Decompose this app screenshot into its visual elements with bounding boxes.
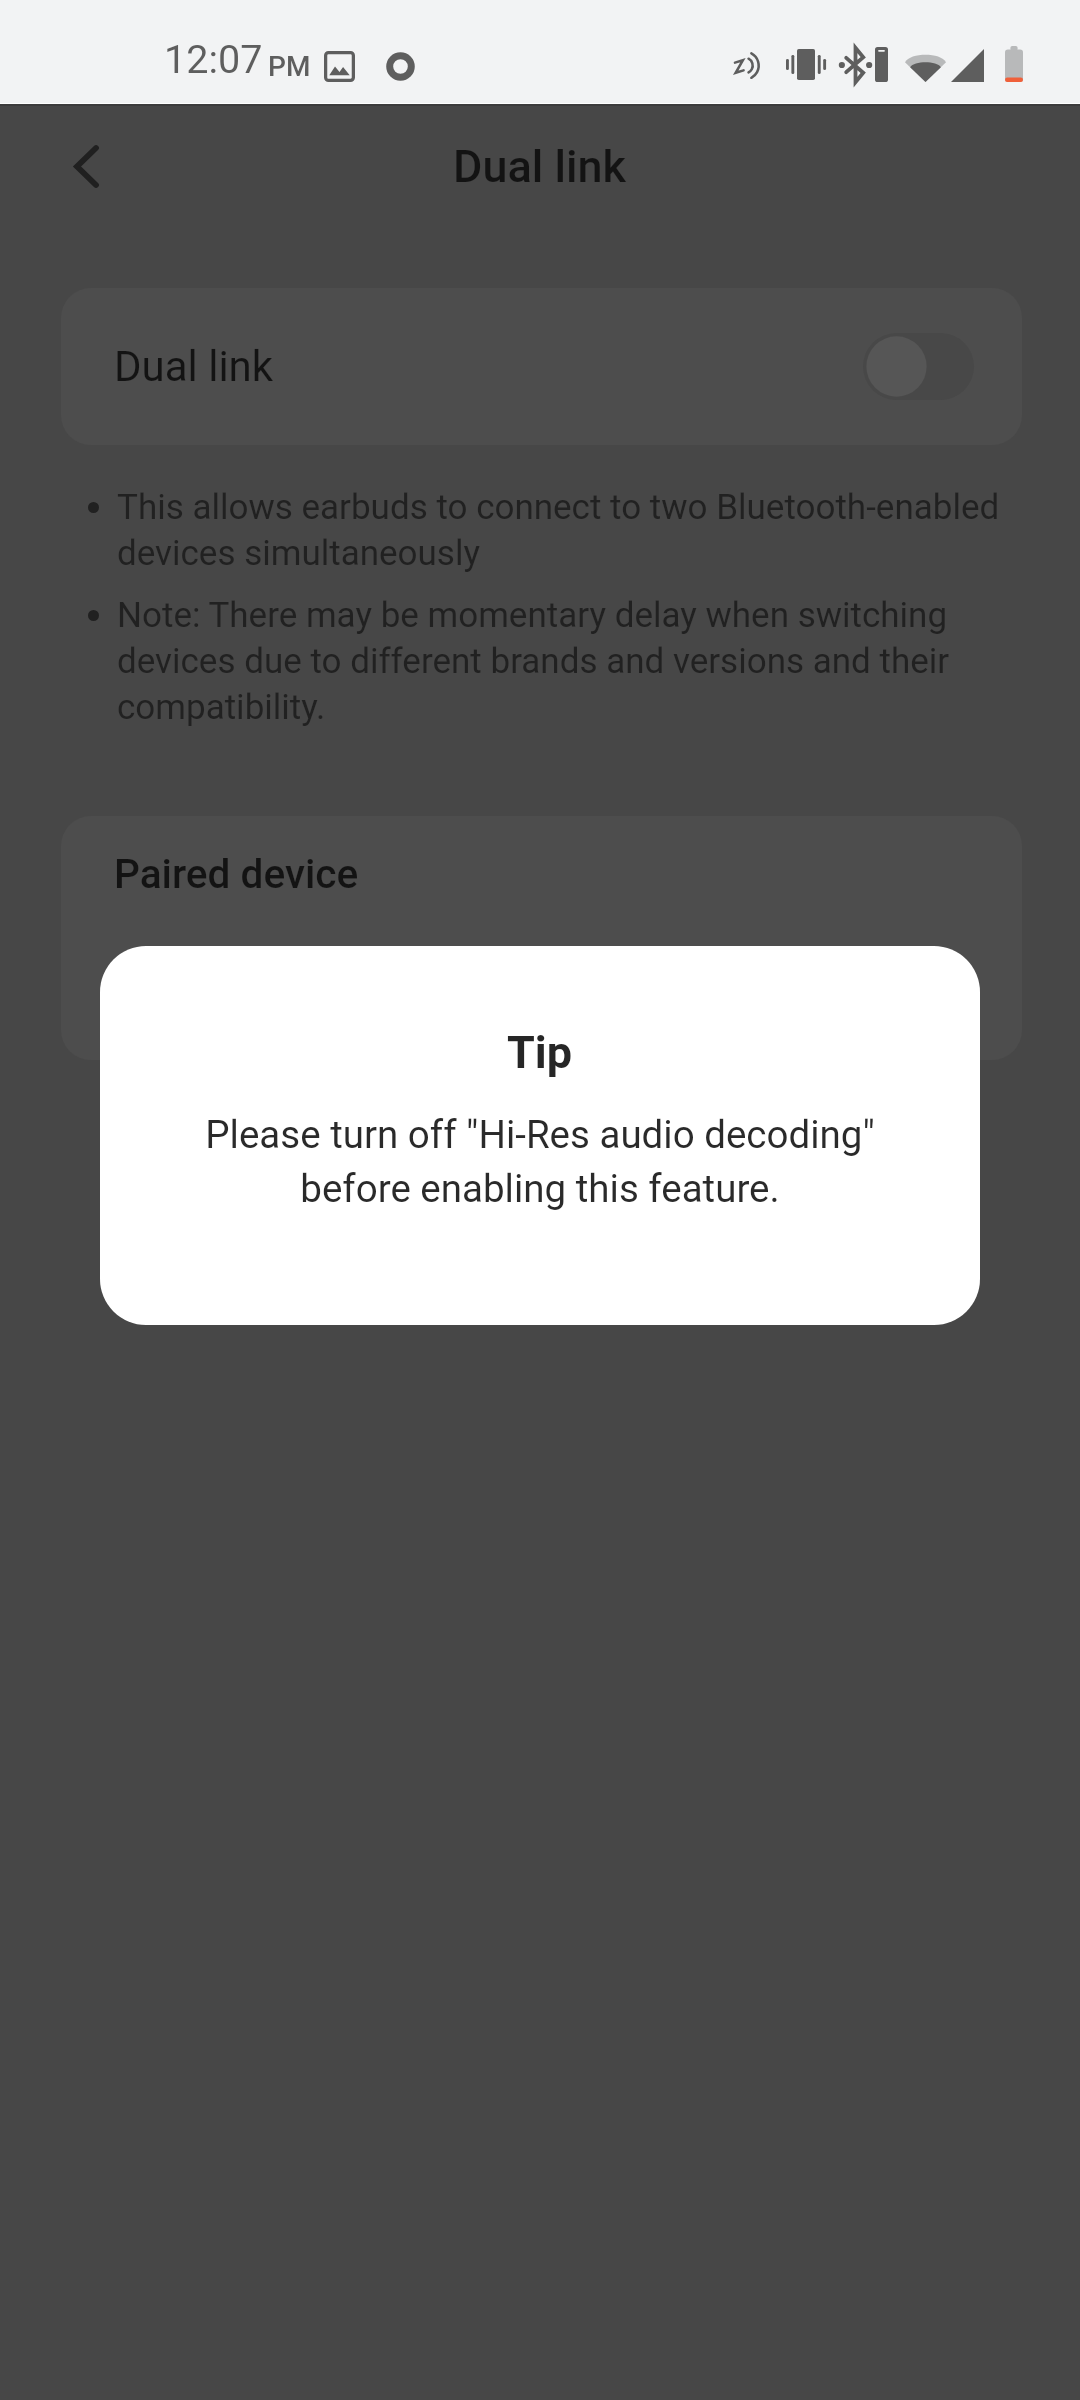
button[interactable]: Paired device xyxy=(61,816,1022,1060)
staticText: Paired device xyxy=(114,850,359,897)
staticText: Dual link xyxy=(453,140,627,193)
staticText: Please turn off "Hi-Res audio decoding" … xyxy=(205,1112,875,1211)
button[interactable]: Dual link xyxy=(61,288,1022,445)
staticText: Note: There may be momentary delay when … xyxy=(117,595,1017,728)
staticText: PM xyxy=(268,50,311,83)
staticText: Tip xyxy=(507,1026,573,1079)
button[interactable]: Dual link toggle, off xyxy=(863,333,974,400)
staticText: Dual link xyxy=(114,342,274,391)
staticText: 12:07 xyxy=(164,36,263,82)
button[interactable]: Back xyxy=(40,130,132,202)
staticText: This allows earbuds to connect to two Bl… xyxy=(117,487,1017,574)
